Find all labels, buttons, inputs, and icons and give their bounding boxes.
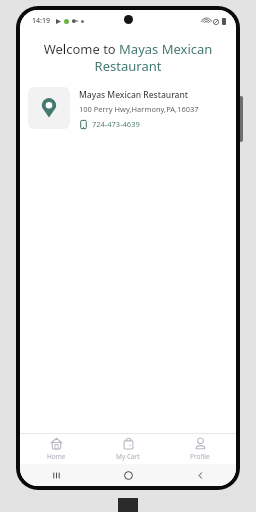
button[interactable]: My Cart [92,434,164,464]
staticText: Profile [190,452,210,461]
button[interactable]: Mayas Mexican Restaurant [20,81,236,135]
button[interactable]: 724-473-4639 [79,119,140,129]
staticText: Welcome to Mayas Mexican Restaurant [30,40,226,75]
button[interactable]: Back [164,464,236,486]
button[interactable]: Profile [164,434,236,464]
button[interactable]: Home [20,434,92,464]
staticText: My Cart [116,452,140,461]
button[interactable]: Home [92,464,164,486]
staticText: 100 Perry Hwy,Harmony,PA,16037 [79,104,199,114]
button[interactable]: Recent apps [20,464,92,486]
staticText: 724-473-4639 [92,119,140,129]
staticText: 14:19 [32,16,50,26]
staticText: Mayas Mexican Restaurant [79,89,189,101]
staticText: Home [47,452,66,461]
